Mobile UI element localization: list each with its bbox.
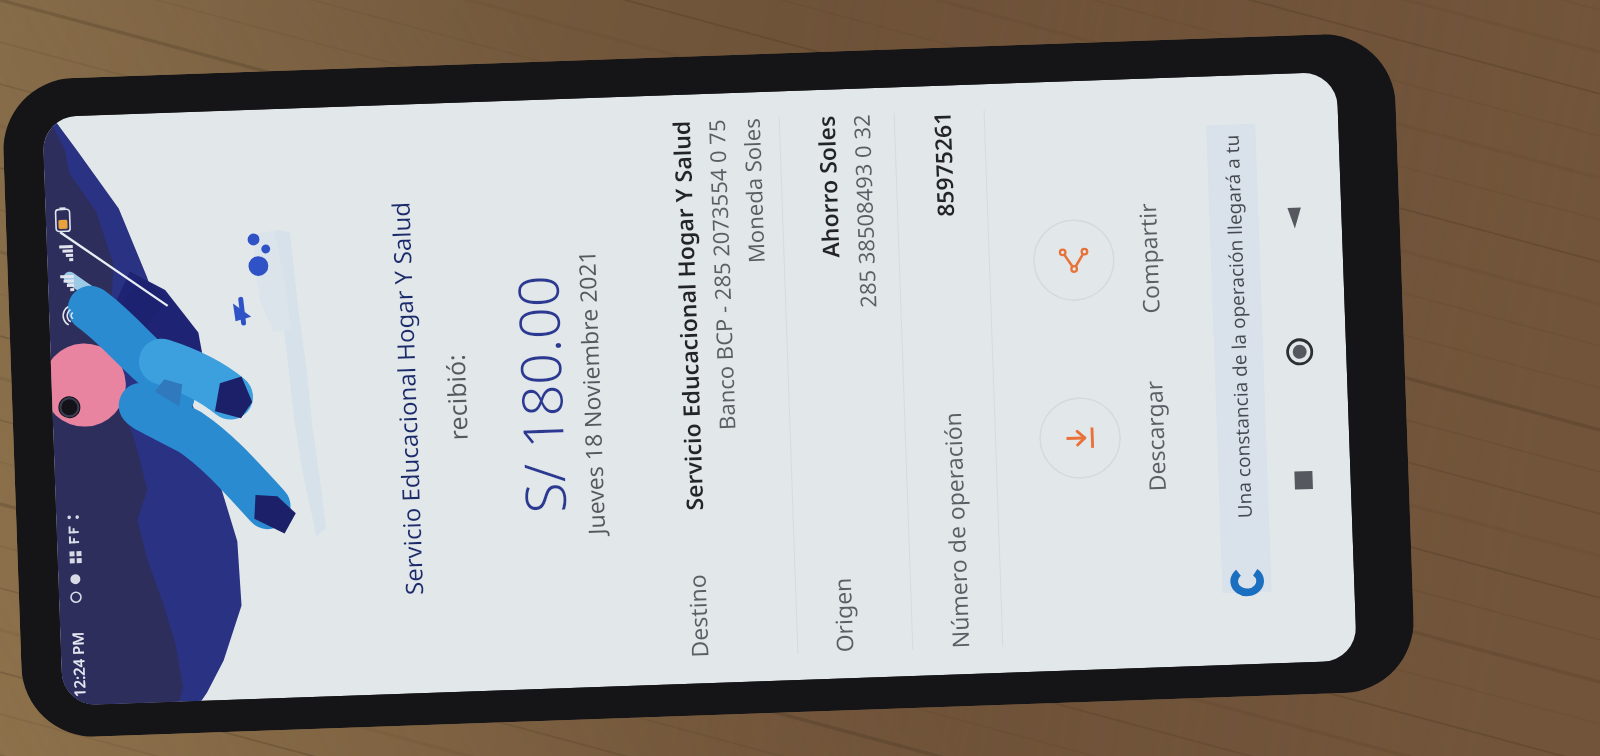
staticText: 285 38508493 0 32 — [846, 114, 882, 309]
staticText: Origen — [826, 577, 859, 653]
staticText: Ahorro Soles — [810, 115, 846, 259]
staticText: Servicio Educacional Hogar Y Salud — [383, 201, 430, 596]
staticText: Descargar — [1137, 380, 1172, 492]
staticText: Jueves 18 Noviembre 2021 — [570, 250, 611, 536]
staticText: Número de operación — [936, 411, 975, 649]
button[interactable]: Home — [1272, 325, 1326, 379]
staticText: S/ 180.00 — [498, 274, 582, 515]
staticText: Servicio Educacional Hogar Y Salud — [665, 120, 709, 512]
staticText: Compartir — [1131, 202, 1166, 314]
button[interactable]: Recents — [1277, 453, 1331, 507]
staticText: 85975261 — [926, 111, 960, 218]
staticText: 12:24 PM — [67, 631, 89, 697]
other: Compartir — [1056, 243, 1091, 278]
button[interactable]: Una constancia de la operación llegará a… — [1206, 124, 1271, 593]
button[interactable]: Compartir — [1031, 202, 1166, 318]
button[interactable]: Descargar — [1037, 380, 1172, 495]
staticText: Banco BCP - 285 2073554 0 75 — [701, 119, 741, 431]
other: Descargar — [1062, 420, 1098, 456]
staticText: Destino — [681, 573, 714, 658]
button[interactable]: Back — [1268, 192, 1321, 245]
staticText: recibió: — [438, 353, 475, 441]
staticText: Una constancia de la operación llegará a… — [1219, 134, 1258, 519]
staticText: Moneda Soles — [736, 118, 771, 264]
